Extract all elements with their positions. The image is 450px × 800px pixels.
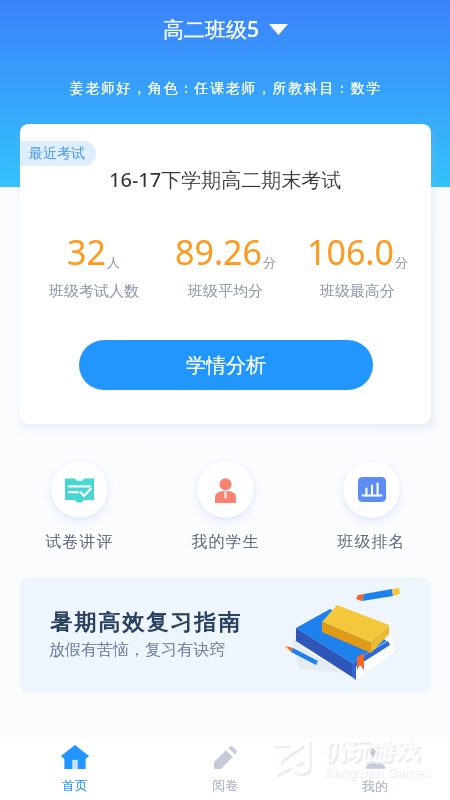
staticText: 我的 bbox=[362, 778, 388, 794]
staticText: 高二班级5 bbox=[163, 15, 260, 44]
staticText: Rengwan Games bbox=[325, 763, 431, 781]
staticText: 我的学生 bbox=[191, 532, 259, 552]
staticText: 16-17下学期高二期末考试 bbox=[109, 166, 342, 193]
button[interactable]: 阅卷 bbox=[150, 738, 300, 800]
button[interactable]: 暑期高效复习指南 bbox=[20, 578, 431, 693]
staticText: 班级平均分 bbox=[188, 282, 263, 301]
button[interactable]: 首页 bbox=[0, 738, 150, 800]
staticText: 仍玩游戏 bbox=[324, 739, 422, 768]
staticText: 32 bbox=[67, 229, 106, 275]
staticText: 暑期高效复习指南 bbox=[49, 609, 241, 637]
staticText: 首页 bbox=[62, 777, 88, 793]
staticText: 班级最高分 bbox=[320, 282, 395, 301]
staticText: 放假有苦恼，复习有诀窍 bbox=[49, 640, 225, 660]
staticText: 最近考试 bbox=[29, 145, 85, 163]
button[interactable]: 高二班级5 bbox=[155, 11, 296, 48]
staticText: 仍玩游戏 bbox=[322, 737, 420, 766]
staticText: 人 bbox=[107, 254, 120, 270]
staticText: 阅卷 bbox=[212, 777, 238, 793]
button[interactable]: 我的学生 bbox=[191, 461, 259, 552]
staticText: 班级排名 bbox=[337, 532, 405, 552]
button[interactable]: 学情分析 bbox=[79, 340, 373, 390]
staticText: 班级考试人数 bbox=[49, 282, 139, 301]
staticText: Rengwan Games bbox=[326, 764, 432, 782]
button[interactable]: 班级排名 bbox=[337, 461, 405, 552]
button[interactable]: 我的 bbox=[300, 738, 450, 800]
staticText: 分 bbox=[263, 254, 276, 270]
staticText: 106.0 bbox=[307, 229, 394, 275]
staticText: 89.26 bbox=[175, 229, 262, 275]
staticText: 分 bbox=[395, 254, 408, 270]
staticText: 学情分析 bbox=[186, 353, 266, 378]
staticText: 姜老师好，角色：任课老师，所教科目：数学 bbox=[69, 80, 381, 98]
button[interactable]: 试卷讲评 bbox=[45, 461, 113, 552]
staticText: 试卷讲评 bbox=[45, 532, 113, 552]
